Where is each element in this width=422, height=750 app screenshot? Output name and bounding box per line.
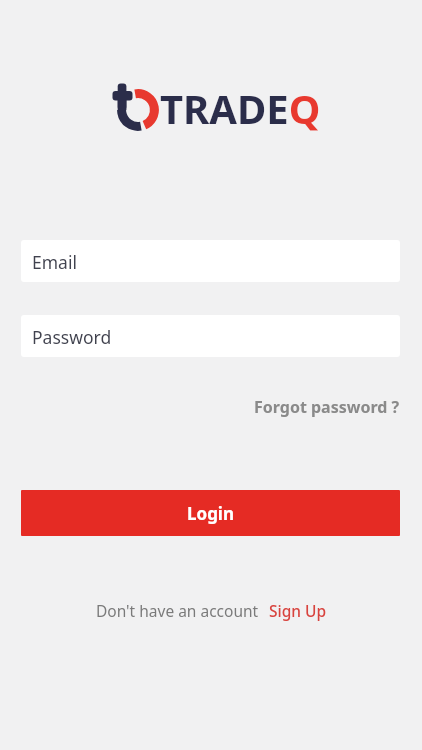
staticText: TRADEQ (160, 81, 321, 135)
button[interactable]: Login (21, 490, 400, 536)
button[interactable]: Forgot password ? (254, 396, 400, 418)
button[interactable]: Sign Up (269, 600, 327, 621)
staticText: Login (187, 502, 235, 525)
staticText: Don't have an account (96, 600, 259, 621)
staticText: Email (32, 250, 77, 274)
button[interactable]: Email (21, 240, 400, 282)
staticText: Password (32, 325, 112, 349)
button[interactable]: Password (21, 315, 400, 357)
